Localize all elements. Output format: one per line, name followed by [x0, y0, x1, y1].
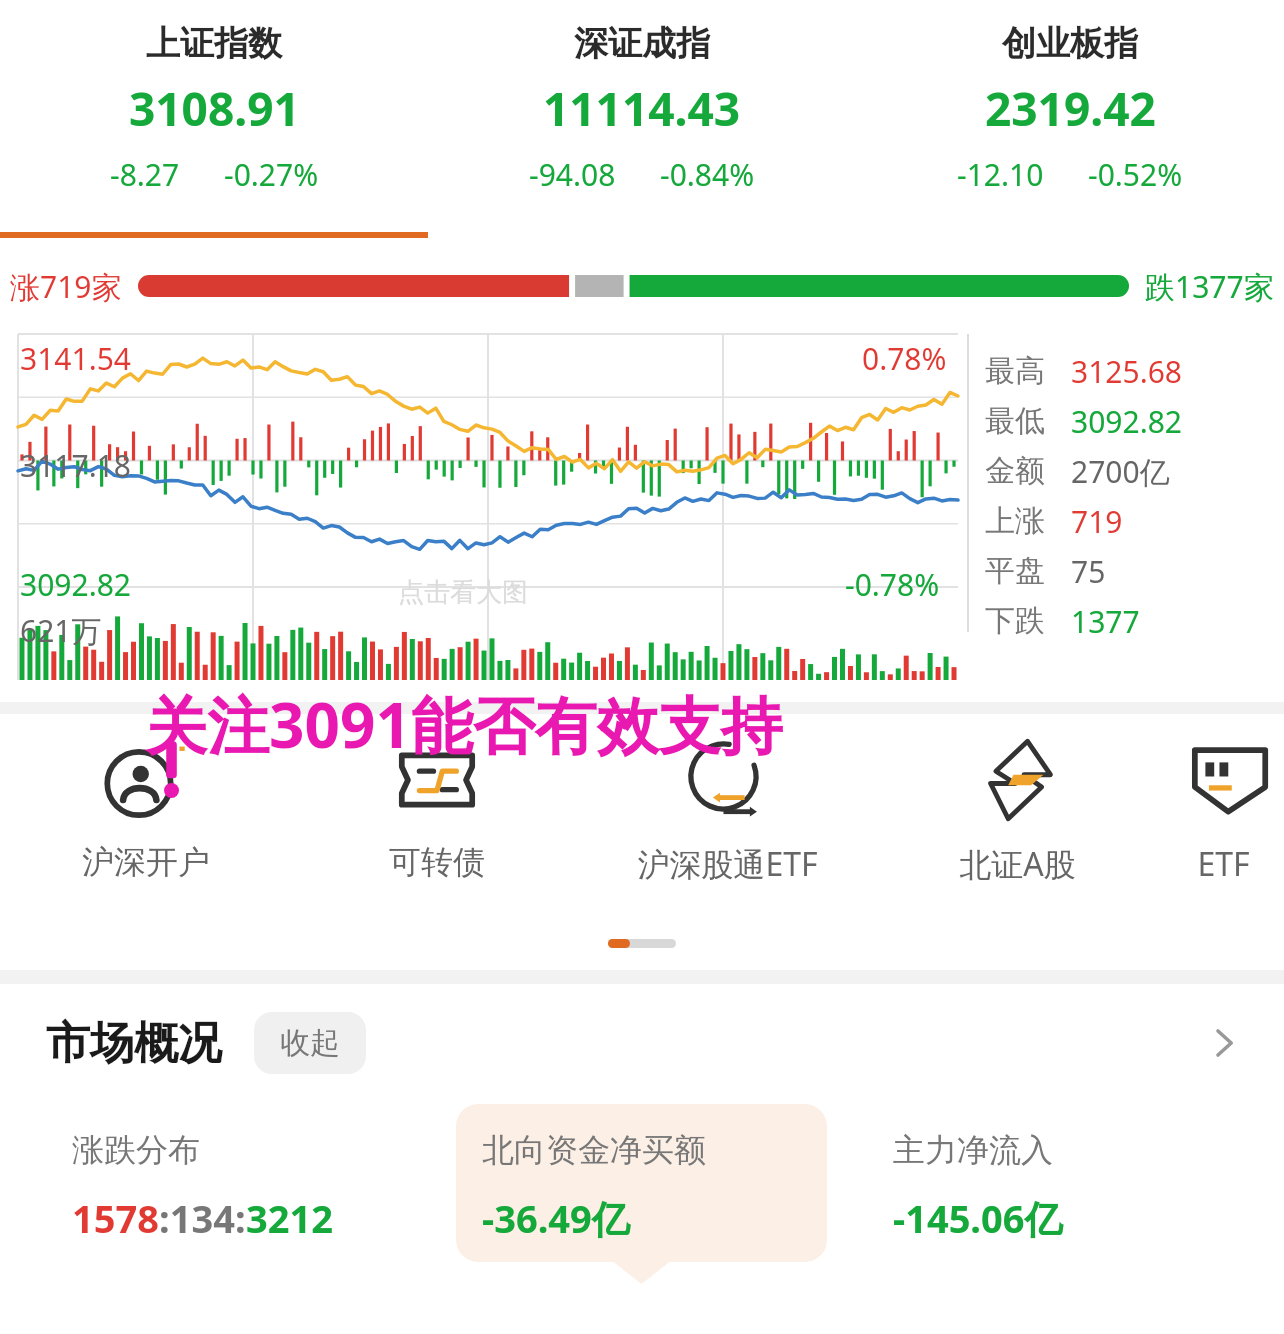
staticText: 1578 — [72, 1192, 159, 1244]
staticText: 点击看大图 — [398, 576, 528, 609]
staticText: 3108.91 — [129, 77, 300, 140]
staticText: -12.10 — [957, 154, 1044, 195]
staticText: 关注3091能否有效支持 — [145, 682, 783, 767]
staticText: -145.06亿 — [893, 1192, 1063, 1244]
staticText: 最高 — [985, 352, 1045, 390]
staticText: 平盘 — [985, 552, 1045, 590]
button[interactable]: 沪深开户 — [0, 714, 291, 882]
staticText: 11114.43 — [543, 77, 741, 140]
staticText: 1377 — [1071, 601, 1140, 642]
staticText: 3092.82 — [20, 564, 131, 605]
button[interactable]: 深证成指 — [428, 0, 856, 195]
staticText: 3125.68 — [1071, 351, 1182, 392]
staticText: 沪深股通ETF — [637, 842, 818, 886]
button[interactable]: 创业板指 — [856, 0, 1284, 195]
staticText: 深证成指 — [574, 22, 710, 65]
staticText: 上证指数 — [146, 22, 282, 65]
staticText: :134: — [159, 1192, 246, 1244]
staticText: 3212 — [246, 1192, 333, 1244]
staticText: 3117.18 — [20, 445, 131, 486]
staticText: -36.49亿 — [482, 1192, 630, 1244]
staticText: 2700亿 — [1071, 451, 1170, 492]
staticText: 3092.82 — [1071, 401, 1182, 442]
staticText: 下跌 — [985, 602, 1045, 640]
button[interactable]: 沪深股通ETF — [582, 714, 872, 886]
staticText: 最低 — [985, 402, 1045, 440]
staticText: 涨跌分布 — [72, 1130, 200, 1170]
button[interactable]: 市场概况 — [0, 984, 1284, 1074]
button[interactable]: 可转债 — [291, 714, 582, 882]
staticText: -8.27 — [110, 154, 180, 195]
button[interactable]: 北向资金净买额 — [456, 1104, 827, 1262]
staticText: -94.08 — [529, 154, 616, 195]
staticText: 收起 — [280, 1024, 340, 1062]
staticText: 75 — [1071, 551, 1106, 592]
staticText: 沪深开户 — [82, 842, 210, 882]
staticText: 上涨 — [985, 502, 1045, 540]
staticText: 北向资金净买额 — [482, 1130, 706, 1170]
other: 更多 — [1204, 1023, 1244, 1063]
staticText: 0.78% — [862, 338, 947, 379]
staticText: 719 — [1071, 501, 1123, 542]
staticText: 跌1377家 — [1145, 266, 1274, 307]
staticText: -0.52% — [1088, 154, 1183, 195]
button[interactable]: 涨跌分布 — [46, 1104, 418, 1262]
staticText: 市场概况 — [46, 1016, 222, 1071]
staticText: 金额 — [985, 452, 1045, 490]
staticText: -0.84% — [660, 154, 755, 195]
staticText: ETF — [1197, 842, 1250, 886]
staticText: 创业板指 — [1002, 22, 1138, 65]
button[interactable]: 上证指数 — [0, 0, 428, 195]
staticText: 可转债 — [389, 842, 485, 882]
staticText: 2319.42 — [985, 77, 1156, 140]
staticText: 涨719家 — [10, 266, 122, 307]
staticText: -0.78% — [845, 564, 940, 605]
staticText: 主力净流入 — [893, 1130, 1053, 1170]
button[interactable]: 主力净流入 — [867, 1104, 1238, 1262]
button[interactable]: 北证A股 — [872, 714, 1162, 886]
staticText: 北证A股 — [959, 842, 1076, 886]
button[interactable]: ETF — [1162, 714, 1284, 886]
staticText: 621万 — [20, 610, 102, 651]
staticText: -0.27% — [224, 154, 319, 195]
staticText: 3141.54 — [20, 338, 131, 379]
